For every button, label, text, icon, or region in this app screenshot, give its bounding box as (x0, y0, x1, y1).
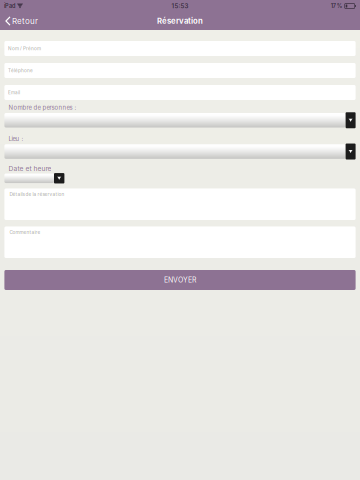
staticText: Retour (12, 16, 38, 26)
staticText: Email (8, 90, 20, 95)
button[interactable]: Retour (0, 12, 44, 30)
staticText: Date et heure (8, 164, 51, 173)
staticText: 15:53 (171, 2, 188, 10)
button[interactable]: Choisir (4, 143, 356, 159)
staticText: Téléphone (8, 68, 33, 73)
staticText: Nombre de personnes : (8, 104, 76, 111)
button[interactable]: Choisir (4, 173, 64, 183)
staticText: ENVOYER (164, 276, 196, 284)
staticText: 17 % (331, 3, 343, 9)
staticText: Détails de la réservation (9, 191, 64, 197)
button[interactable]: Choisir (4, 112, 356, 128)
staticText: iPad (4, 3, 15, 9)
staticText: Commentaire (9, 229, 40, 235)
button[interactable]: ENVOYER (4, 270, 356, 290)
staticText: Lieu : (8, 135, 23, 143)
staticText: Nom / Prénom (8, 46, 41, 51)
staticText: Réservation (157, 16, 203, 26)
